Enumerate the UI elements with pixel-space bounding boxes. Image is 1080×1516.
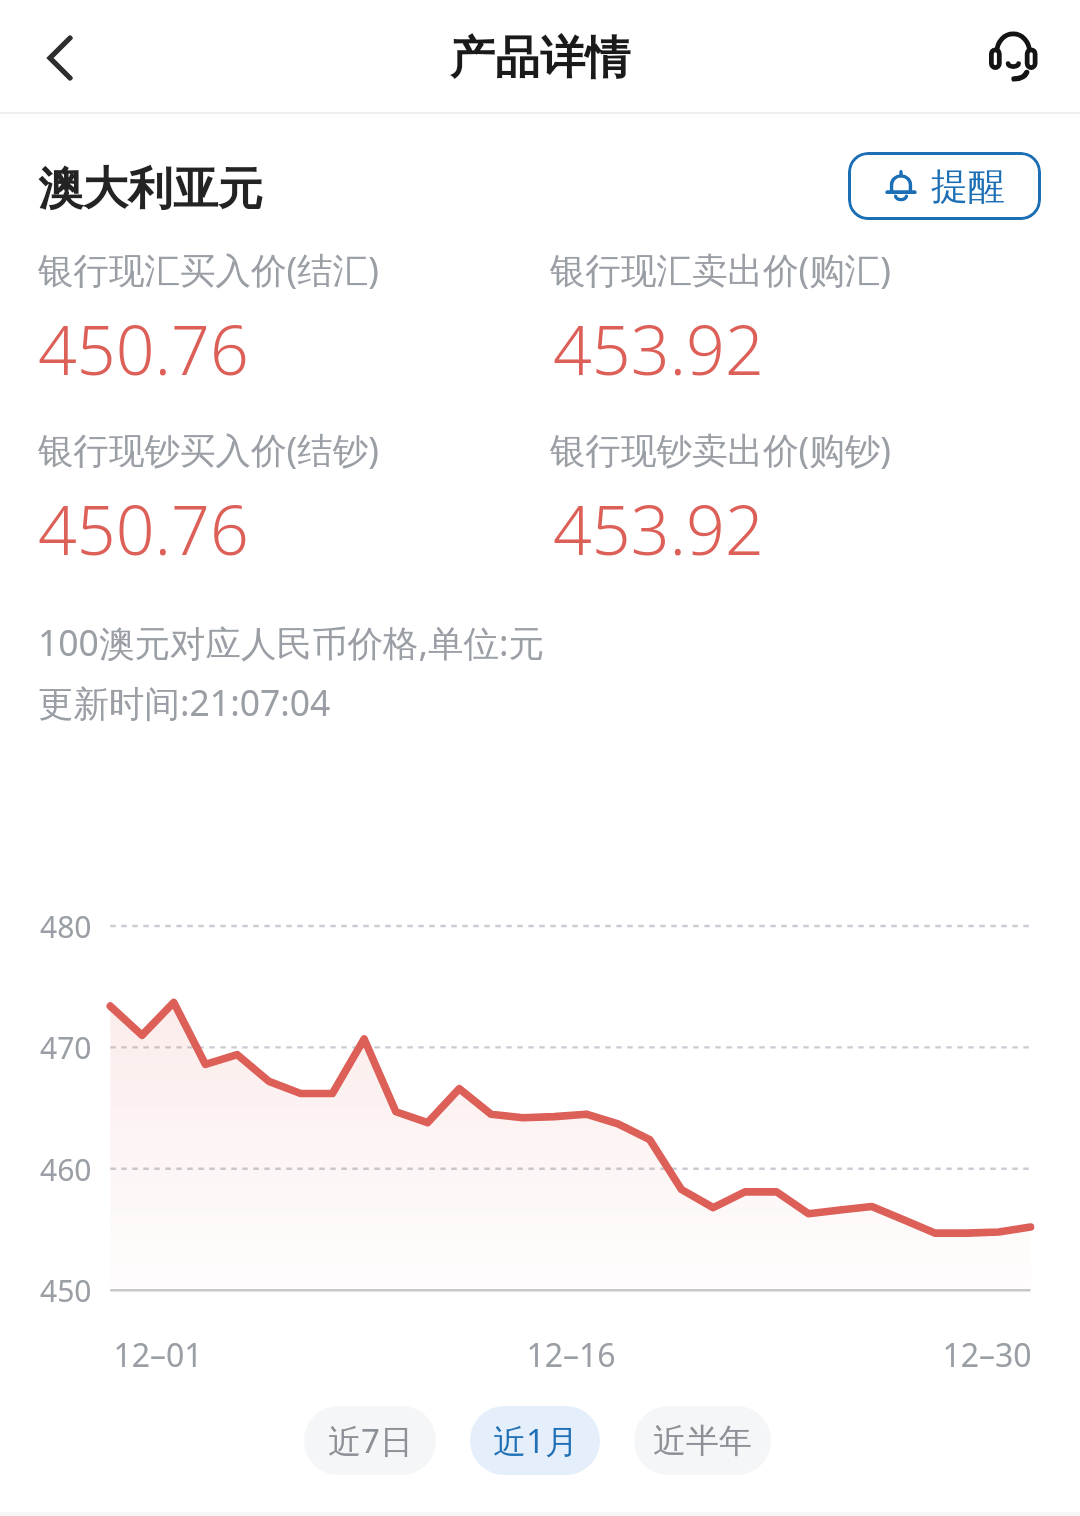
staticText: 100澳元对应人民币价格,单位:元 — [38, 618, 544, 666]
staticText: 银行现汇卖出价(购汇) — [550, 245, 891, 293]
staticText: 450.76 — [38, 302, 249, 395]
button[interactable]: Back — [22, 20, 98, 96]
staticText: 453.92 — [553, 482, 764, 575]
staticText: 近7日 — [328, 1418, 413, 1463]
staticText: 470 — [40, 1027, 92, 1068]
staticText: 近半年 — [653, 1420, 752, 1462]
staticText: 产品详情 — [450, 30, 630, 87]
staticText: 银行现钞卖出价(购钞) — [550, 425, 891, 473]
staticText: 12–01 — [113, 1333, 203, 1377]
staticText: 453.92 — [553, 302, 764, 395]
button[interactable]: Customer service — [976, 19, 1052, 95]
staticText: 银行现汇买入价(结汇) — [38, 245, 379, 293]
staticText: 更新时间:21:07:04 — [38, 678, 331, 726]
staticText: 480 — [40, 906, 92, 947]
staticText: 450 — [40, 1270, 92, 1311]
staticText: 提醒 — [931, 163, 1005, 210]
staticText: 450.76 — [38, 482, 249, 575]
staticText: 12–16 — [526, 1333, 616, 1377]
staticText: 460 — [40, 1149, 92, 1190]
button[interactable]: 近7日 — [304, 1406, 436, 1475]
button[interactable]: 近1月 — [470, 1406, 600, 1475]
staticText: 近1月 — [493, 1418, 578, 1463]
staticText: 澳大利亚元 — [38, 161, 263, 218]
staticText: 12–30 — [942, 1333, 1032, 1377]
staticText: 银行现钞买入价(结钞) — [38, 425, 379, 473]
button[interactable]: 近半年 — [634, 1406, 771, 1475]
button[interactable]: 提醒 — [848, 152, 1041, 220]
